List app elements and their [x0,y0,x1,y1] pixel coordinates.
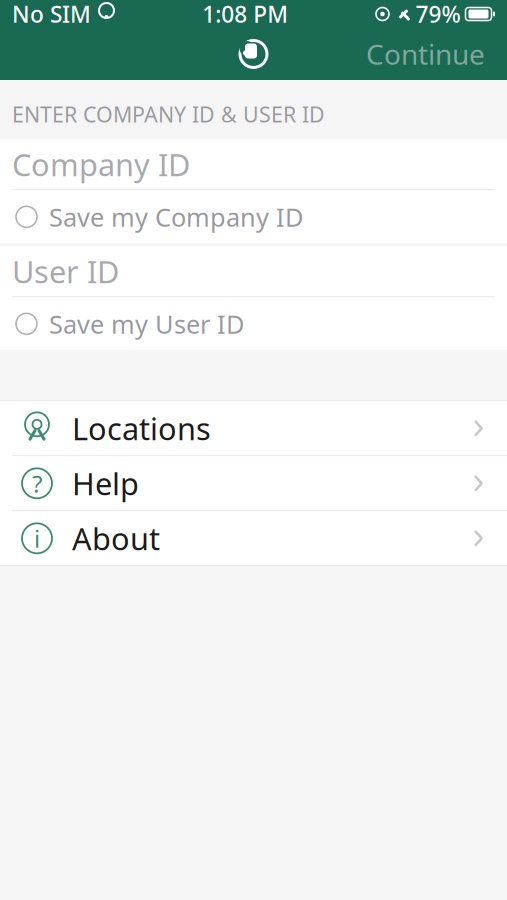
staticText: Save my User ID [49,307,244,341]
staticText: About [72,518,160,559]
staticText: User ID [12,251,119,292]
staticText: Locations [72,408,211,449]
button[interactable]: ? [0,456,507,510]
button[interactable]: Company ID [0,139,507,189]
staticText: No SIM [12,0,91,29]
staticText: Help [72,463,139,504]
button[interactable]: User ID [0,246,507,296]
button[interactable]: Save my Company ID [0,190,507,243]
staticText: ? [32,467,42,499]
button[interactable]: Locations [0,401,507,455]
button[interactable]: Continue [354,27,497,81]
staticText: ENTER COMPANY ID & USER ID [12,100,325,128]
staticText: Save my Company ID [49,200,303,234]
button[interactable]: Save my User ID [0,297,507,350]
staticText: 79% [415,0,460,29]
staticText: 1:08 PM [202,0,288,29]
staticText: i [34,522,40,554]
button[interactable]: i [0,511,507,565]
staticText: Continue [366,35,485,73]
staticText: Company ID [12,144,190,185]
button[interactable]: App logo [231,32,275,76]
